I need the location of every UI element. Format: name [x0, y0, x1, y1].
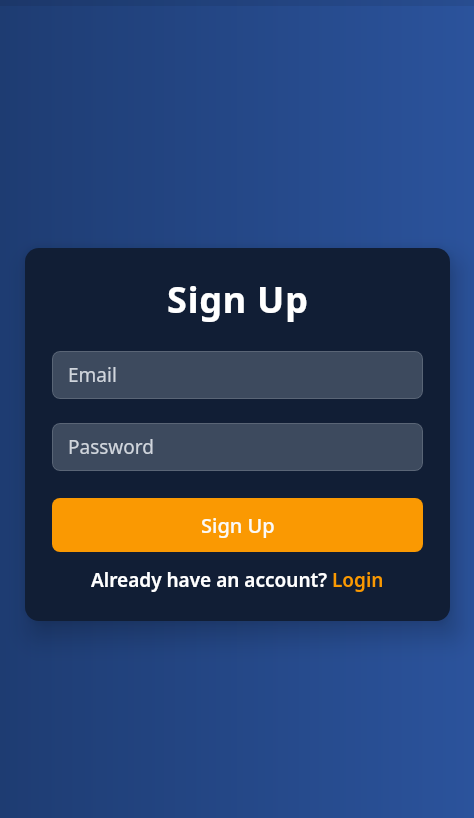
button[interactable]: Password	[52, 423, 423, 471]
staticText: Password	[68, 434, 154, 460]
staticText: Email	[68, 362, 117, 388]
staticText: Sign Up	[201, 512, 275, 539]
button[interactable]: Email	[52, 351, 423, 399]
staticText: Sign Up	[167, 275, 309, 324]
button[interactable]: Sign Up	[52, 498, 423, 552]
staticText: Already have an account?	[91, 567, 332, 593]
button[interactable]: Login	[332, 567, 384, 593]
staticText: Login	[332, 567, 384, 593]
